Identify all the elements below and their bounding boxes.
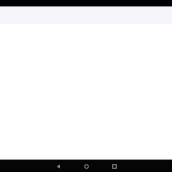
- button[interactable]: Home: [72, 160, 100, 172]
- button[interactable]: Back: [44, 160, 72, 172]
- button[interactable]: Recent apps: [100, 160, 128, 172]
